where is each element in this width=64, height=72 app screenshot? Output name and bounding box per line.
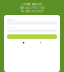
staticText: No card needed (20, 9, 43, 13)
staticText: Start your free trial (19, 6, 44, 9)
staticText: Create account (22, 2, 42, 6)
staticText: Email address (7, 19, 17, 21)
button[interactable] (7, 34, 57, 39)
staticText: Password (7, 27, 15, 29)
